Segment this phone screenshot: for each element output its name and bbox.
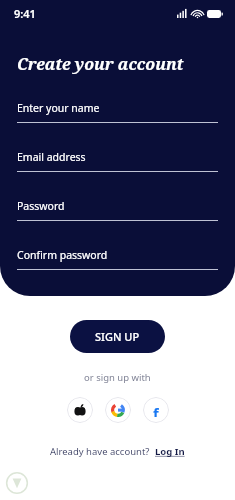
button[interactable]: SIGN UP — [70, 320, 165, 353]
staticText: Enter your name — [17, 101, 100, 115]
button[interactable]: Sign up with Google — [105, 397, 131, 423]
staticText: Create your account — [17, 53, 184, 75]
staticText: or sign up with — [84, 371, 151, 384]
staticText: Log In — [155, 445, 185, 458]
staticText: Already have account? — [50, 445, 150, 458]
staticText: Email address — [17, 150, 86, 164]
button[interactable]: Sign up with Apple — [67, 397, 93, 423]
button[interactable]: Already have account? — [44, 443, 191, 460]
staticText: Confirm password — [17, 248, 108, 262]
staticText: SIGN UP — [95, 329, 140, 344]
staticText: f — [153, 403, 159, 417]
staticText: Password — [17, 199, 65, 213]
button[interactable]: Sign up with Facebook — [143, 397, 169, 423]
staticText: 9:41 — [14, 6, 36, 21]
